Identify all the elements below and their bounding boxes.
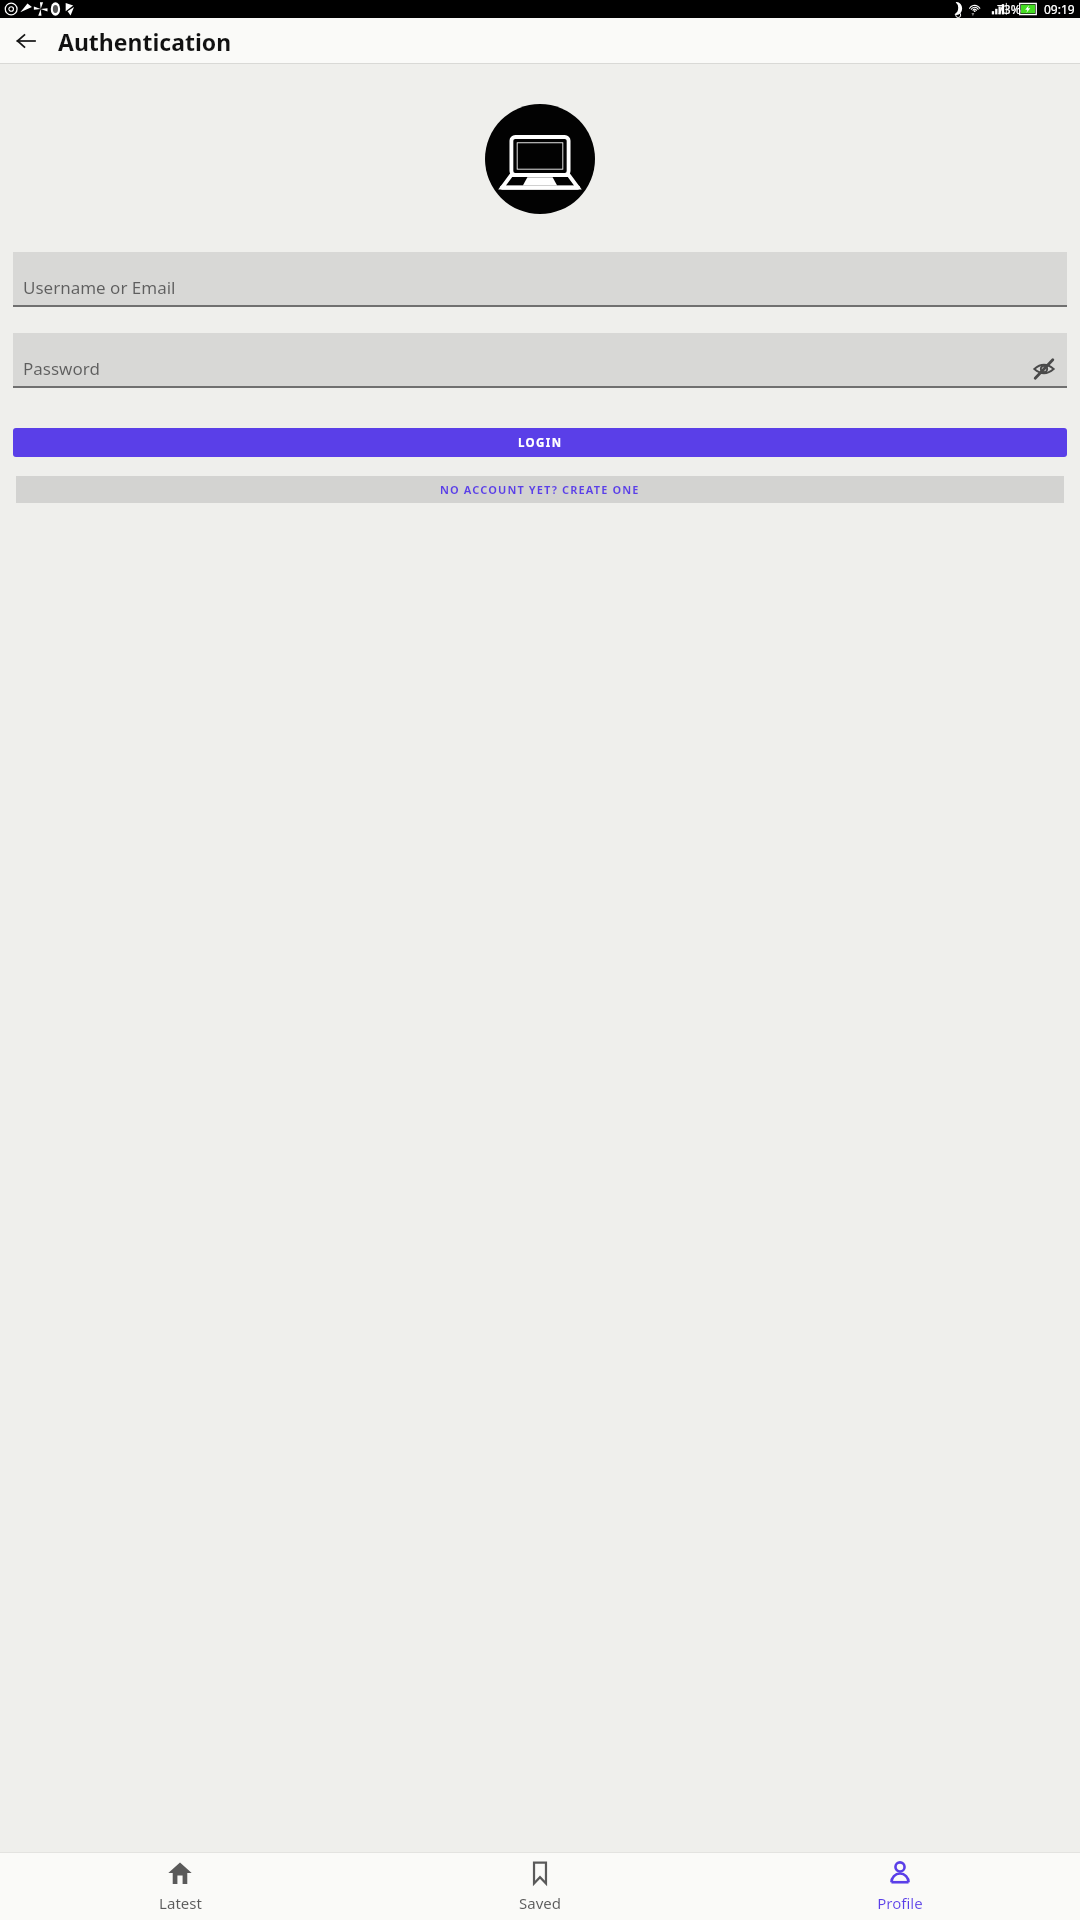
button[interactable]: NO ACCOUNT YET? CREATE ONE bbox=[16, 476, 1064, 503]
staticText: Password bbox=[23, 357, 100, 380]
button[interactable]: Back bbox=[10, 25, 42, 57]
staticText: Latest bbox=[159, 1893, 202, 1913]
staticText: LOGIN bbox=[518, 435, 563, 451]
staticText: Profile bbox=[877, 1893, 923, 1913]
staticText: 73% bbox=[997, 1, 1021, 17]
button[interactable]: Profile bbox=[720, 1852, 1080, 1920]
staticText: Username or Email bbox=[23, 276, 176, 299]
button[interactable]: Saved bbox=[360, 1852, 720, 1920]
button[interactable]: Latest bbox=[0, 1852, 360, 1920]
staticText: Authentication bbox=[58, 26, 232, 57]
staticText: 09:19 bbox=[1044, 1, 1075, 17]
staticText: Saved bbox=[519, 1893, 561, 1913]
button[interactable]: LOGIN bbox=[13, 428, 1067, 457]
button[interactable]: Toggle password visibility bbox=[1031, 356, 1057, 382]
staticText: NO ACCOUNT YET? CREATE ONE bbox=[440, 482, 640, 497]
button[interactable]: Password bbox=[13, 333, 1067, 388]
button[interactable]: Username or Email bbox=[13, 252, 1067, 307]
